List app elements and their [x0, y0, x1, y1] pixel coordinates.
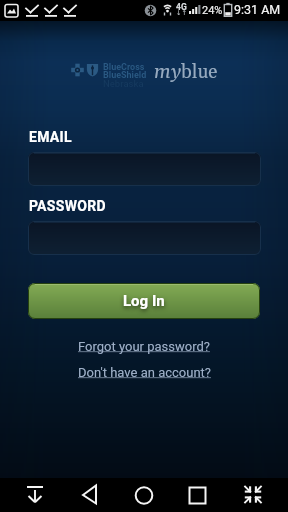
staticText: Log In — [123, 292, 165, 310]
button[interactable] — [114, 478, 172, 512]
staticText: 9:31 AM — [234, 2, 281, 17]
staticText: 24% — [202, 4, 223, 17]
staticText: EMAIL — [29, 129, 72, 145]
button[interactable]: Log In — [28, 283, 260, 319]
button[interactable] — [172, 478, 230, 512]
button[interactable]: Forgot your password? — [78, 339, 210, 354]
staticText: myblue — [154, 60, 218, 84]
button[interactable] — [0, 478, 57, 512]
button[interactable] — [230, 478, 288, 512]
staticText: BlueShield — [103, 70, 147, 81]
staticText: BlueCross — [103, 62, 145, 73]
staticText: PASSWORD — [29, 198, 106, 214]
staticText: Nebraska — [103, 78, 144, 89]
staticText: 4G — [176, 2, 187, 12]
staticText: ↓↑ — [176, 9, 187, 17]
button[interactable] — [28, 221, 261, 255]
button[interactable] — [57, 478, 114, 512]
button[interactable]: Don't have an account? — [78, 365, 211, 380]
button[interactable] — [28, 152, 261, 186]
